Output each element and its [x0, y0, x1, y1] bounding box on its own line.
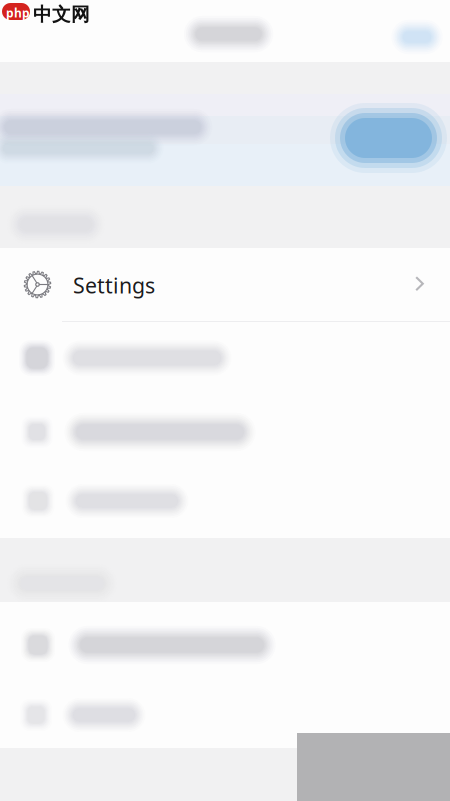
button[interactable] — [0, 322, 450, 394]
staticText: Settings — [73, 271, 155, 299]
button[interactable] — [0, 394, 450, 466]
staticText: php — [6, 5, 30, 21]
staticText: 中文网 — [33, 3, 90, 26]
button[interactable] — [0, 602, 450, 674]
button[interactable]: Edit — [385, 15, 449, 59]
button[interactable]: Get — [326, 99, 450, 177]
button[interactable] — [0, 674, 450, 746]
button[interactable] — [0, 466, 450, 538]
button[interactable]: Settings — [0, 248, 450, 320]
